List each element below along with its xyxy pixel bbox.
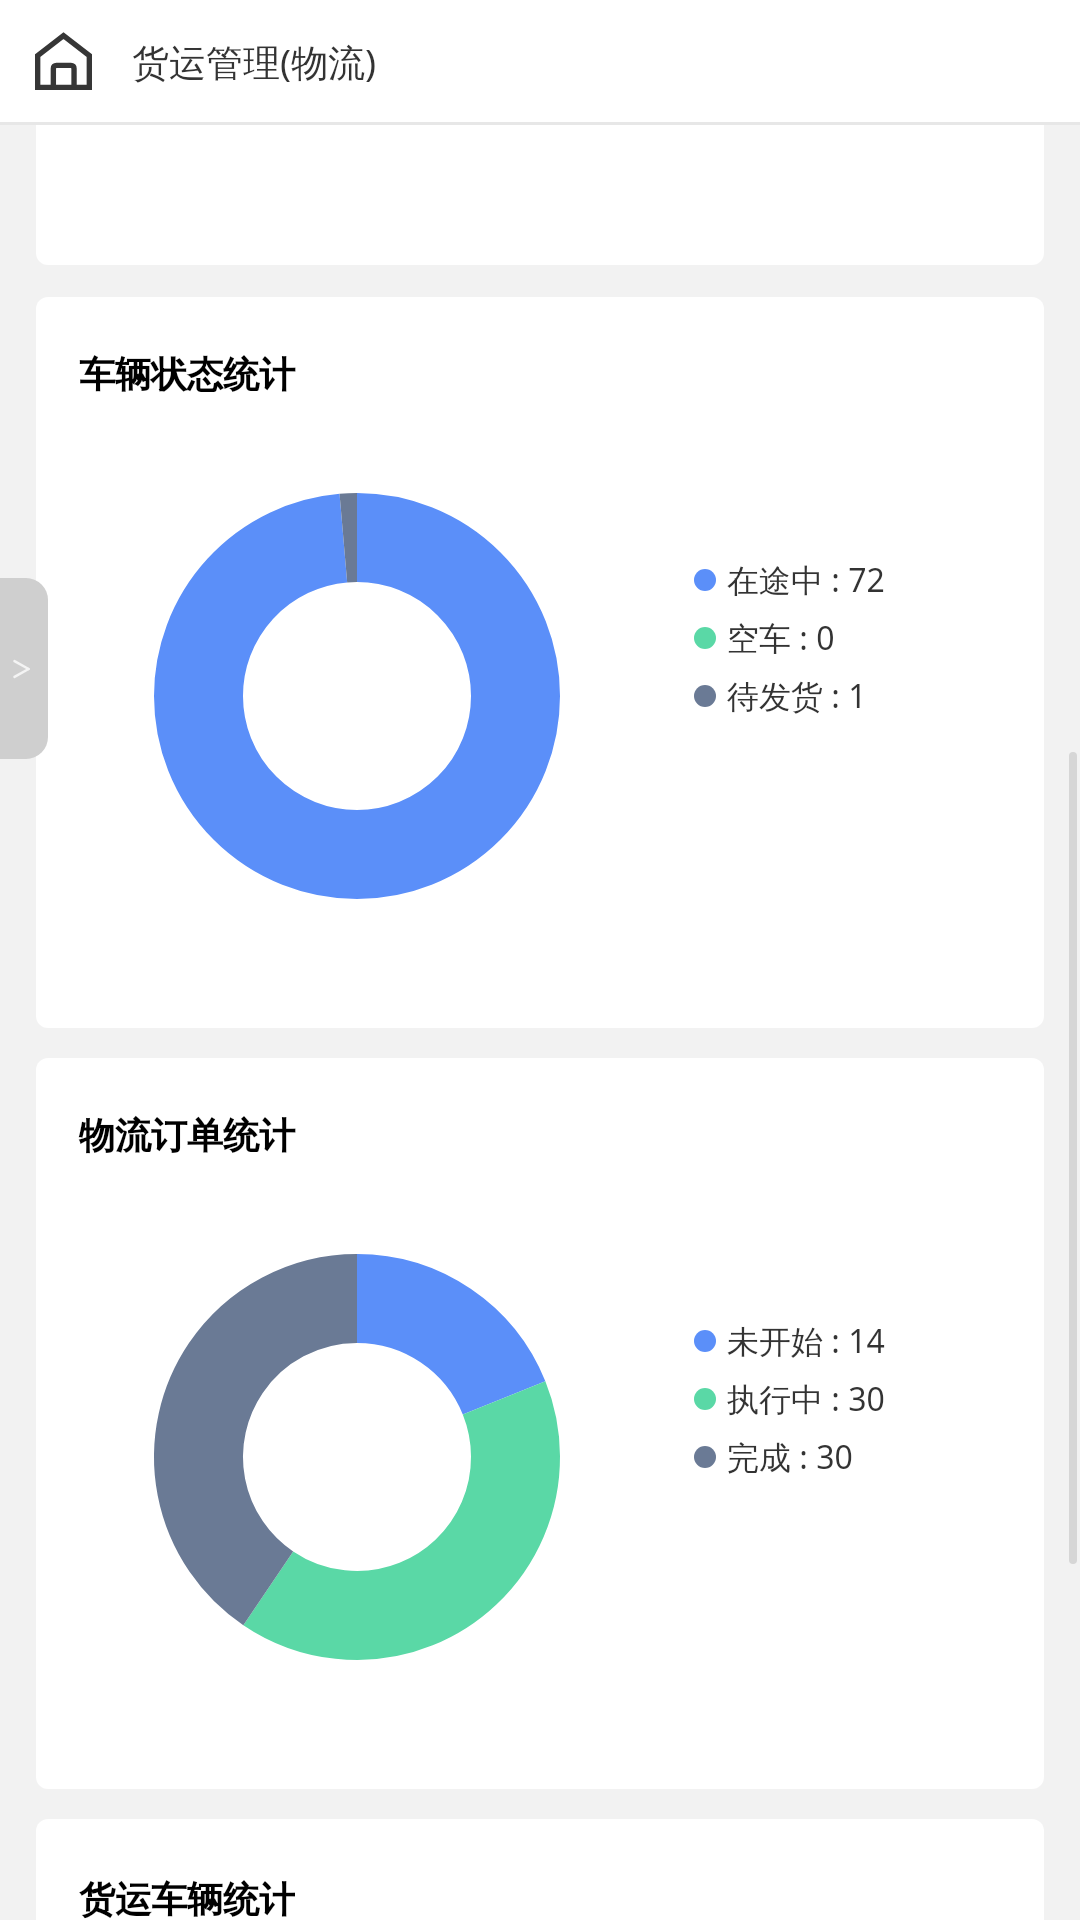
staticText: 执行中 : 30 [727, 1377, 885, 1421]
staticText: 货运管理(物流) [132, 36, 377, 87]
staticText: 物流订单统计 [79, 1113, 295, 1158]
button[interactable]: 物流订单统计 [36, 1058, 1044, 1789]
staticText: 车辆状态统计 [79, 352, 295, 397]
staticText: 完成 : 30 [727, 1435, 853, 1479]
button[interactable]: Open side panel [0, 578, 48, 759]
staticText: 未开始 : 14 [727, 1319, 885, 1363]
staticText: 待发货 : 1 [727, 674, 867, 718]
button[interactable]: 车辆状态统计 [36, 297, 1044, 1028]
button[interactable]: 空车 : 0 [694, 609, 835, 667]
button[interactable]: 执行中 : 30 [694, 1370, 885, 1428]
button[interactable]: 完成 : 30 [694, 1428, 853, 1486]
staticText: 在途中 : 72 [727, 558, 885, 602]
button[interactable]: 未开始 : 14 [694, 1312, 885, 1370]
button[interactable]: 待发货 : 1 [694, 667, 867, 725]
button[interactable]: 在途中 : 72 [694, 551, 885, 609]
button[interactable]: Home [32, 30, 94, 92]
staticText: 空车 : 0 [727, 616, 835, 660]
staticText: 货运车辆统计 [79, 1877, 295, 1920]
